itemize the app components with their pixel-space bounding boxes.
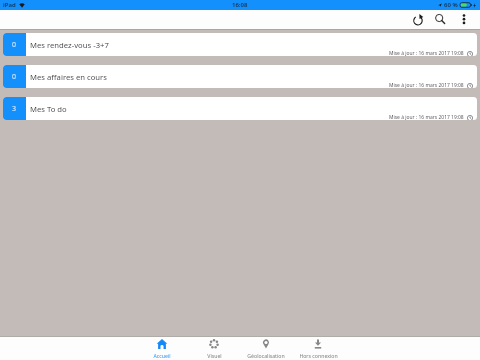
- button[interactable]: Hors connexion: [292, 337, 344, 360]
- button[interactable]: Accueil: [136, 337, 188, 360]
- staticText: Visuel: [207, 352, 222, 359]
- staticText: 0: [12, 72, 17, 82]
- staticText: Mise à jour : 16 mars 2017 19:08: [389, 50, 464, 56]
- button[interactable]: Géolocalisation: [240, 337, 292, 360]
- staticText: 3: [12, 104, 17, 114]
- staticText: iPad: [3, 1, 16, 9]
- staticText: Mes To do: [30, 104, 67, 114]
- staticText: Hors connexion: [299, 352, 338, 359]
- button[interactable]: 0: [3, 65, 477, 88]
- staticText: 0: [12, 40, 17, 50]
- button[interactable]: Search: [430, 10, 450, 30]
- staticText: Mise à jour : 16 mars 2017 19:08: [389, 114, 464, 120]
- staticText: Accueil: [153, 352, 171, 359]
- button[interactable]: 0: [3, 33, 477, 56]
- button[interactable]: More options: [454, 10, 474, 30]
- staticText: Mise à jour : 16 mars 2017 19:08: [389, 82, 464, 88]
- staticText: Mes affaires en cours: [30, 72, 107, 82]
- button[interactable]: Visuel: [188, 337, 240, 360]
- staticText: Mes rendez-vous -3+7: [30, 40, 109, 50]
- staticText: 60 %: [444, 1, 458, 9]
- staticText: 16:08: [232, 1, 248, 9]
- staticText: Géolocalisation: [247, 352, 285, 359]
- button[interactable]: 3: [3, 97, 477, 120]
- button[interactable]: Refresh: [408, 10, 428, 30]
